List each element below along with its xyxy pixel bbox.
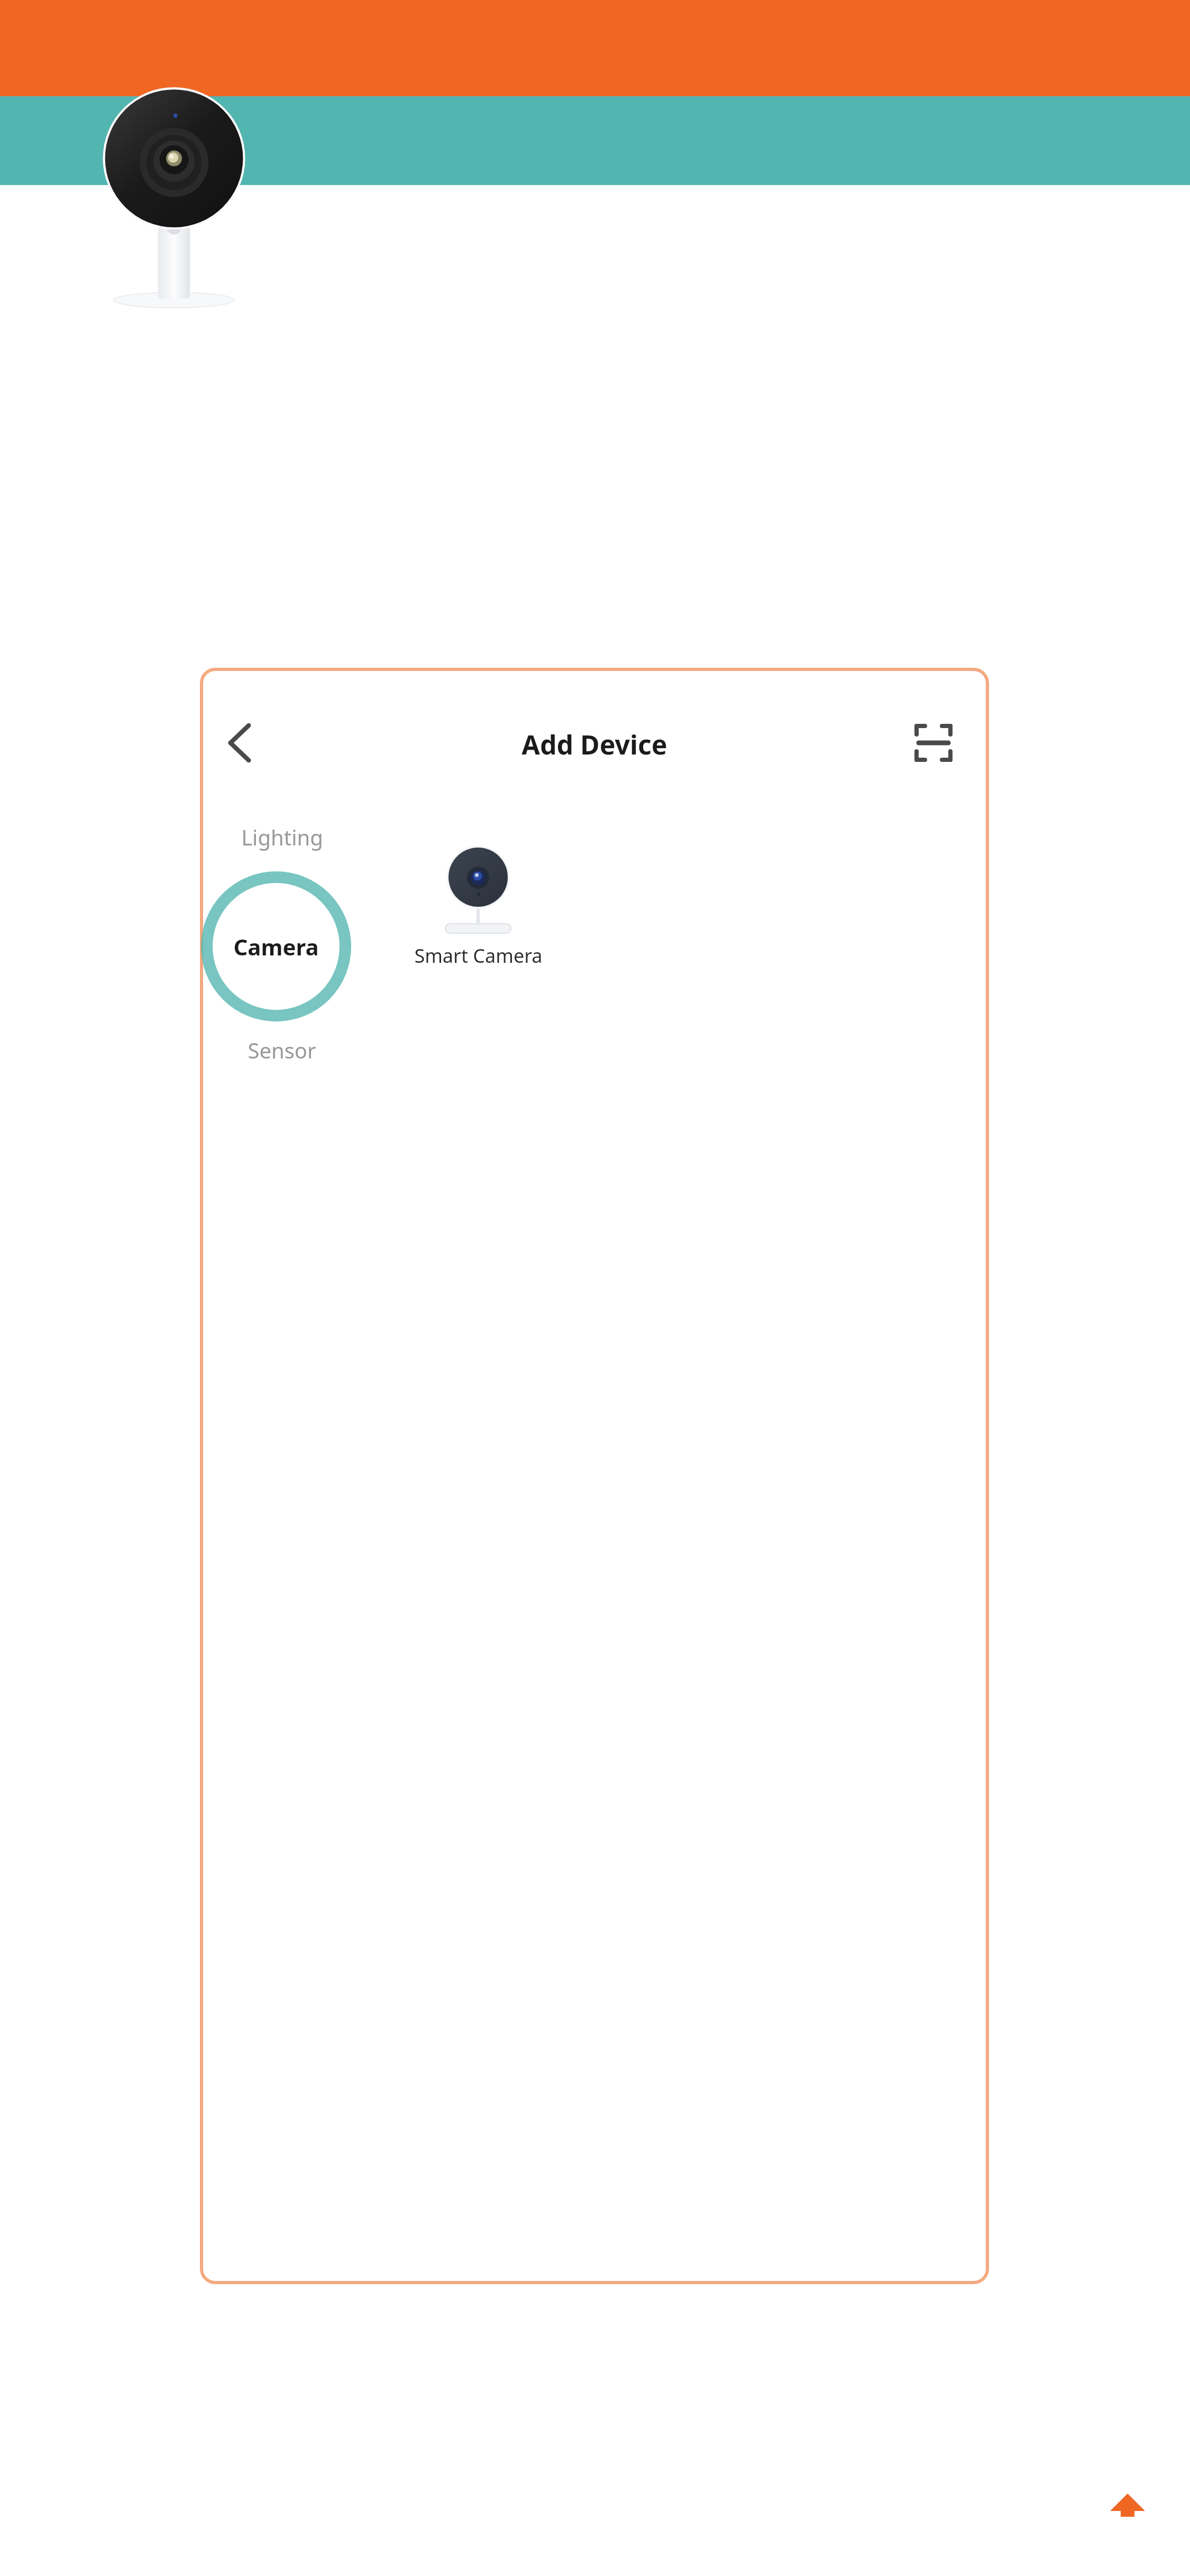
button[interactable]: Back xyxy=(213,716,266,769)
staticText: Smart Camera xyxy=(414,943,543,969)
staticText: Lighting xyxy=(241,823,323,851)
button[interactable]: Camera xyxy=(201,871,351,1022)
button[interactable]: Scan QR code xyxy=(907,716,960,769)
staticText: Add Device xyxy=(521,726,667,762)
staticText: Sensor xyxy=(248,1036,316,1064)
button[interactable]: Smart Camera xyxy=(399,826,557,985)
button[interactable]: Lighting xyxy=(210,812,353,862)
button[interactable]: Scroll to top xyxy=(1091,2468,1165,2542)
button[interactable]: Sensor xyxy=(210,1025,353,1075)
staticText: Camera xyxy=(233,932,319,962)
